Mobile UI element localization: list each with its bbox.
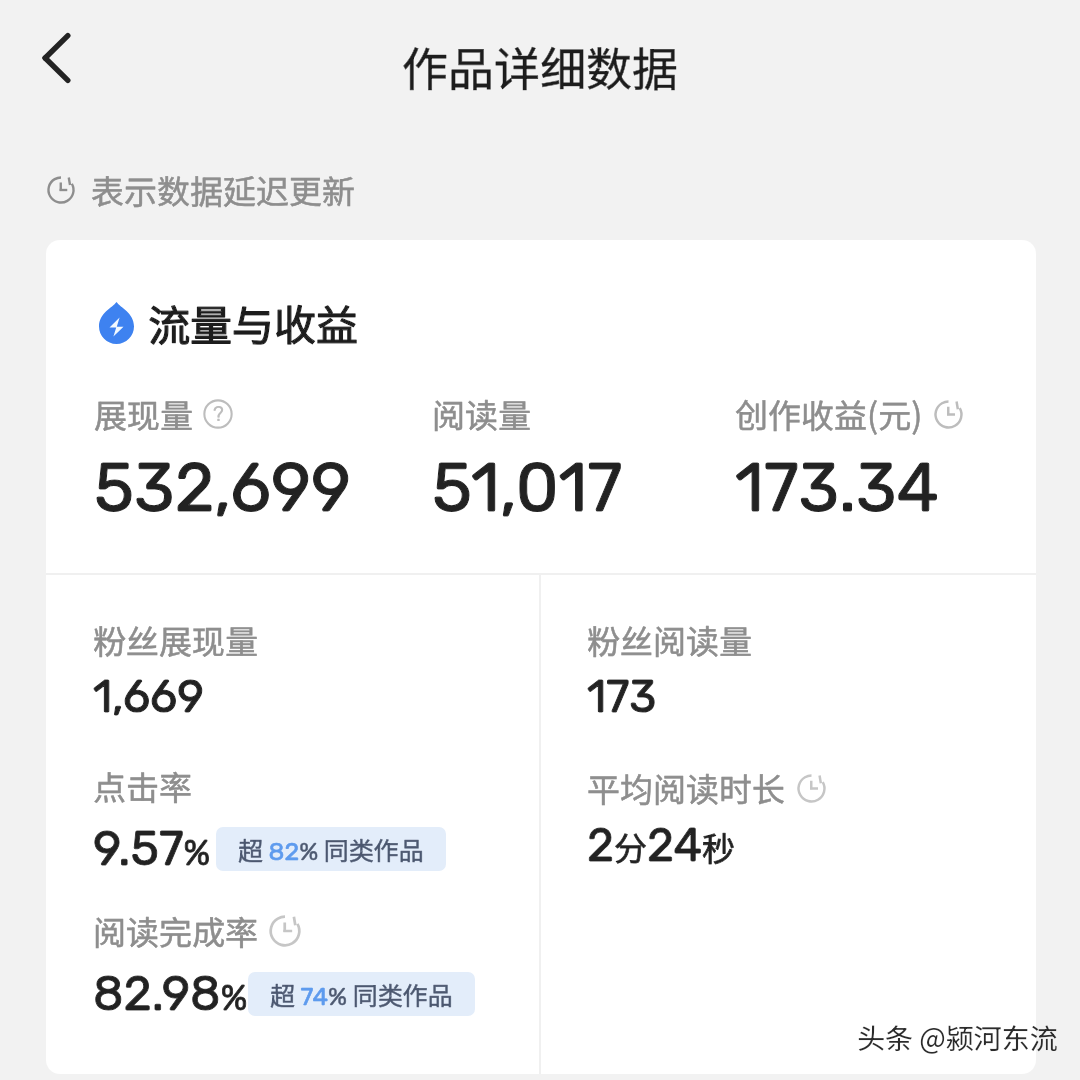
staticText: 2分24秒 xyxy=(587,818,736,873)
staticText: 173.34 xyxy=(735,448,939,528)
staticText: ? xyxy=(213,402,224,426)
staticText: 创作收益(元) xyxy=(735,390,923,438)
button[interactable]: Back xyxy=(25,27,87,89)
staticText: 超 74% 同类作品 xyxy=(270,976,453,1012)
button[interactable]: 粉丝展现量 xyxy=(93,616,258,723)
staticText: 点击率 xyxy=(93,762,192,810)
staticText: 173.34 xyxy=(735,448,939,528)
button[interactable]: 超 82% 同类作品 xyxy=(216,827,446,871)
button[interactable]: 阅读量 xyxy=(432,390,623,528)
button[interactable]: Reading time update delayed xyxy=(797,774,826,803)
staticText: 9.57% xyxy=(93,820,211,877)
button[interactable]: 创作收益(元) xyxy=(735,390,963,528)
staticText: 173 xyxy=(587,670,657,723)
staticText: 创作收益(元) xyxy=(735,390,923,438)
button[interactable]: 点击率 xyxy=(93,762,446,877)
staticText: 流量与收益 xyxy=(148,292,359,353)
staticText: 头条 @颍河东流 xyxy=(857,1017,1058,1058)
staticText: 表示数据延迟更新 xyxy=(91,166,355,214)
staticText: 粉丝展现量 xyxy=(93,616,258,664)
button[interactable]: 阅读完成率 xyxy=(93,907,475,1022)
staticText: 流量与收益 xyxy=(148,292,359,353)
staticText: 平均阅读时长 xyxy=(587,764,785,812)
button[interactable]: Earnings update delayed xyxy=(934,400,963,429)
staticText: 表示数据延迟更新 xyxy=(91,166,355,214)
staticText: 超 82% 同类作品 xyxy=(238,831,424,867)
staticText: 1,669 xyxy=(93,670,204,723)
staticText: 超 74% 同类作品 xyxy=(270,976,453,1012)
staticText: 阅读完成率 xyxy=(93,907,258,955)
staticText: 173 xyxy=(587,670,657,723)
staticText: 展现量 xyxy=(94,390,193,438)
staticText: 粉丝阅读量 xyxy=(587,616,752,664)
button[interactable]: 平均阅读时长 xyxy=(587,764,826,873)
button[interactable]: 展现量 xyxy=(94,390,352,528)
button[interactable]: 超 74% 同类作品 xyxy=(248,972,475,1016)
staticText: 532,699 xyxy=(94,448,352,528)
staticText: 51,017 xyxy=(432,448,623,528)
staticText: 2分24秒 xyxy=(587,818,736,873)
staticText: 粉丝阅读量 xyxy=(587,616,752,664)
button[interactable]: 粉丝阅读量 xyxy=(587,616,752,723)
button[interactable]: What is impressions? xyxy=(203,399,233,429)
button[interactable]: Completion rate update delayed xyxy=(269,915,301,947)
staticText: 粉丝展现量 xyxy=(93,616,258,664)
staticText: 作品详细数据 xyxy=(402,33,678,100)
staticText: 点击率 xyxy=(93,762,192,810)
staticText: 82.98% xyxy=(93,965,248,1022)
staticText: 阅读完成率 xyxy=(93,907,258,955)
staticText: 9.57% xyxy=(93,820,211,877)
staticText: 532,699 xyxy=(94,448,352,528)
staticText: 51,017 xyxy=(432,448,623,528)
staticText: 1,669 xyxy=(93,670,204,723)
staticText: 超 82% 同类作品 xyxy=(238,831,424,867)
staticText: 82.98% xyxy=(93,965,248,1022)
staticText: 作品详细数据 xyxy=(402,33,678,100)
staticText: 阅读量 xyxy=(432,390,531,438)
staticText: 平均阅读时长 xyxy=(587,764,785,812)
staticText: 展现量 xyxy=(94,390,193,438)
staticText: 阅读量 xyxy=(432,390,531,438)
